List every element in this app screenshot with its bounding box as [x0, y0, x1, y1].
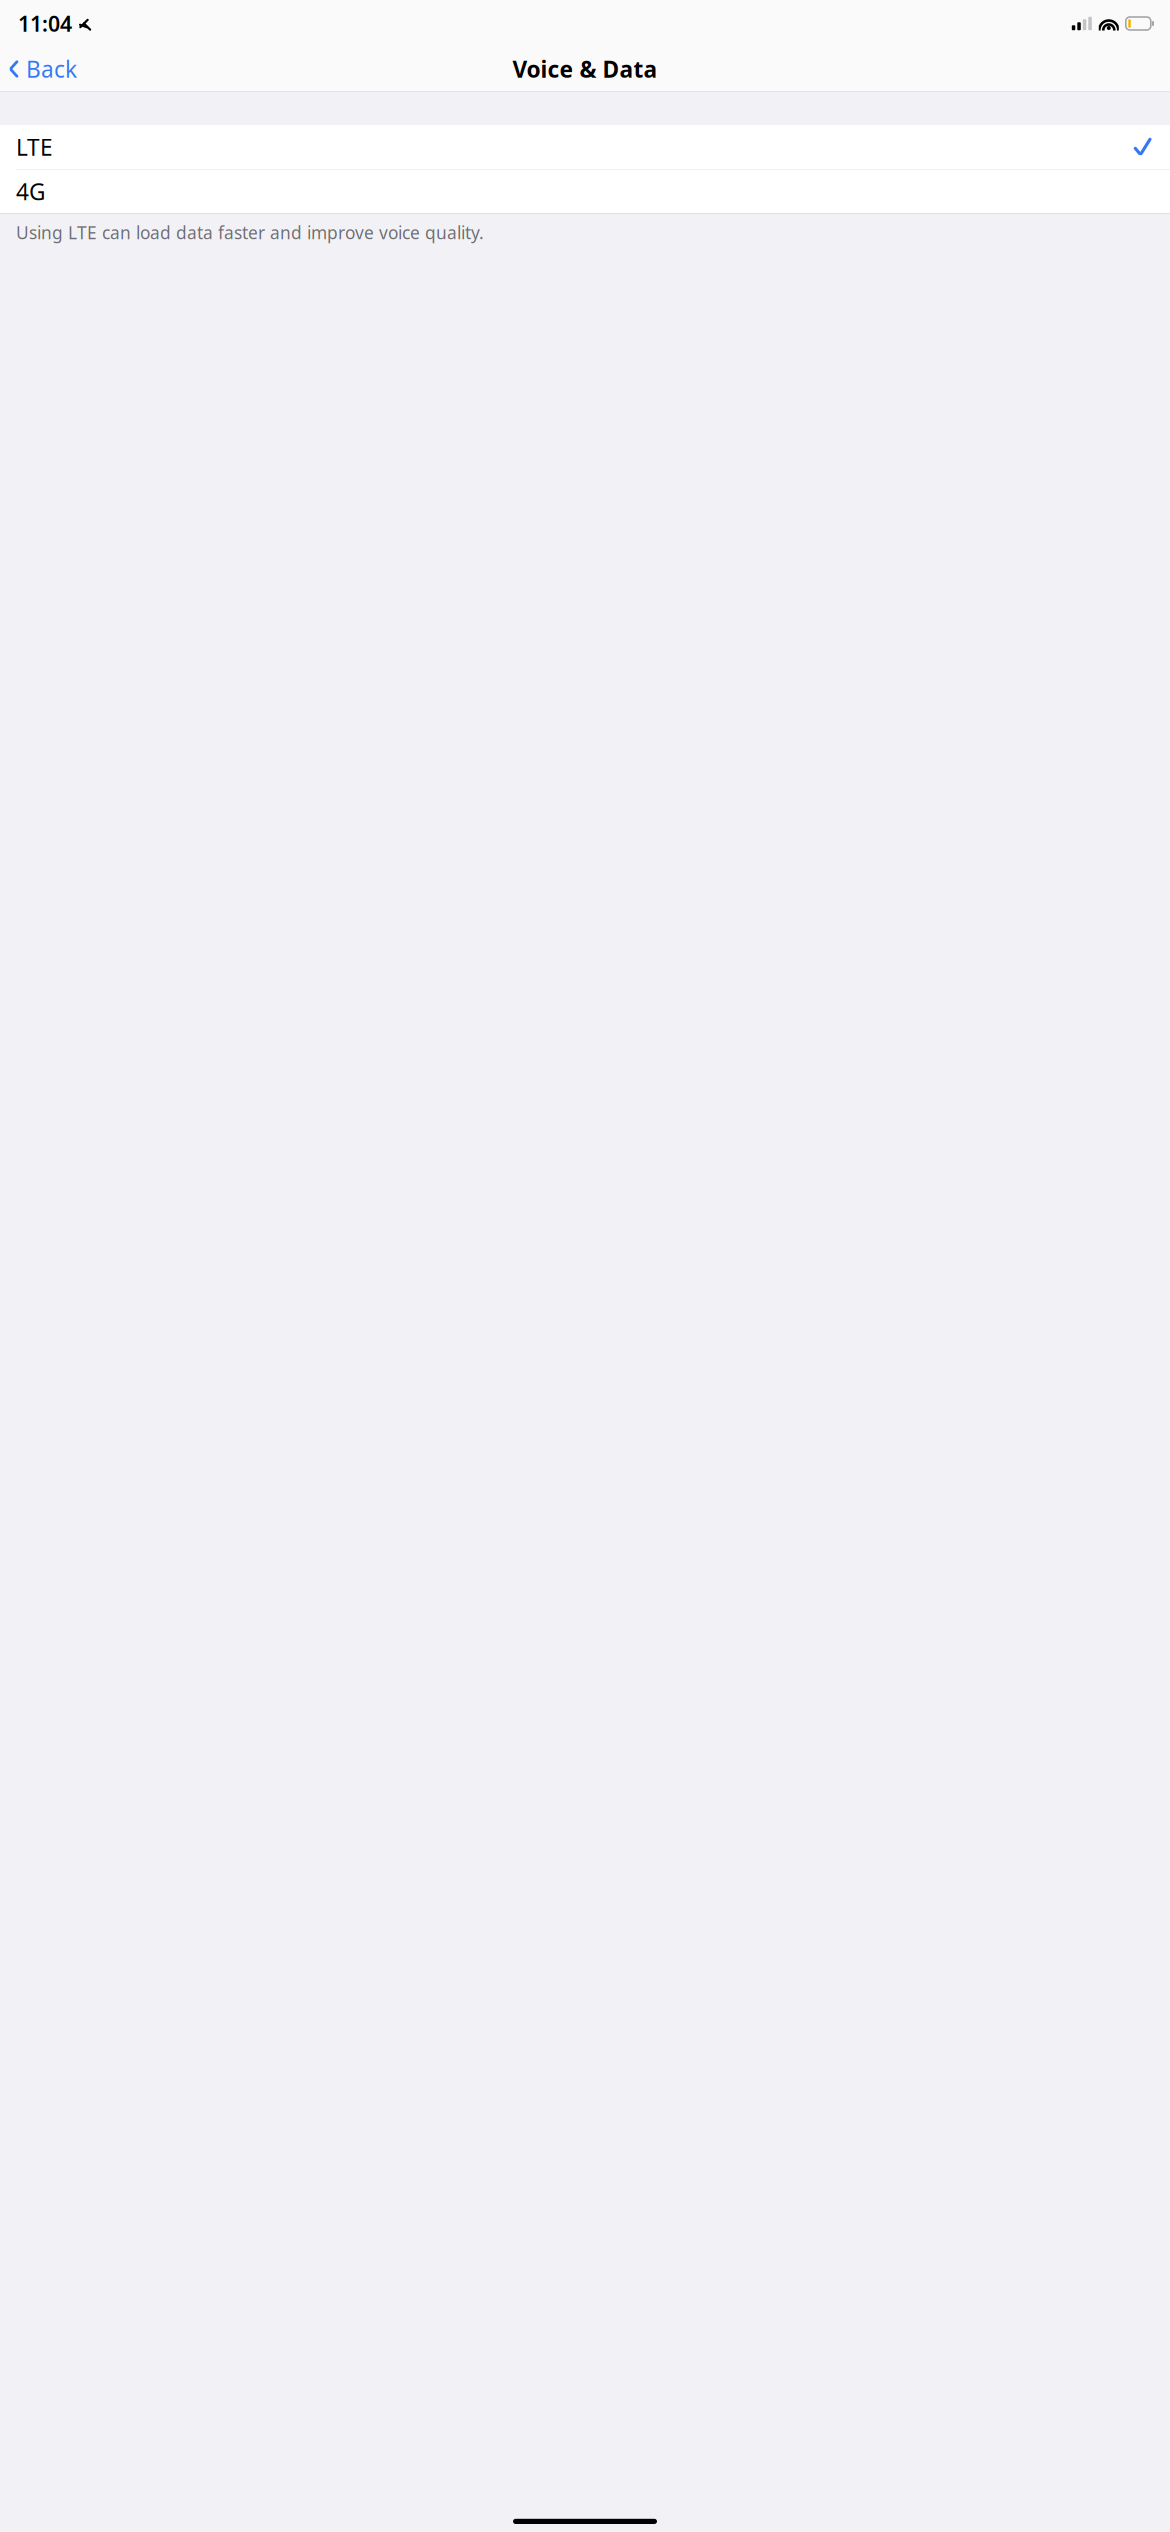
- staticText: Using LTE can load data faster and impro…: [16, 221, 484, 244]
- staticText: Back: [26, 54, 77, 84]
- staticText: 11:04: [18, 9, 72, 38]
- button[interactable]: LTE: [0, 125, 1170, 169]
- staticText: 4G: [16, 176, 46, 206]
- staticText: Voice & Data: [512, 54, 657, 84]
- button[interactable]: 4G: [0, 169, 1170, 213]
- button[interactable]: Back: [0, 47, 87, 91]
- staticText: LTE: [16, 132, 53, 162]
